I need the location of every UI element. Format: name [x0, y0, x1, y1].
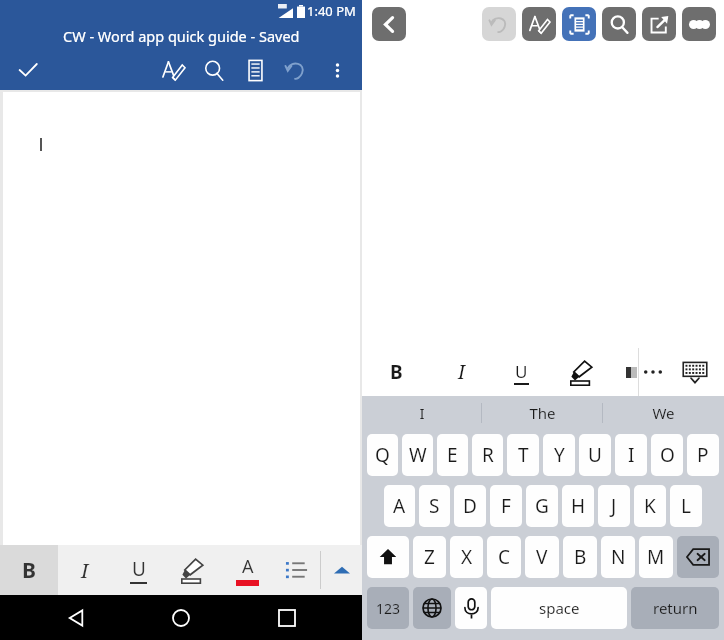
button[interactable]: space: [491, 587, 627, 629]
button[interactable]: M: [639, 536, 673, 578]
button[interactable]: Expand toolbar: [321, 545, 362, 595]
button[interactable]: Recents: [257, 595, 317, 640]
staticText: A: [242, 554, 254, 579]
button[interactable]: X: [450, 536, 483, 578]
staticText: A: [393, 493, 406, 519]
button[interactable]: U: [579, 434, 611, 476]
button[interactable]: Ink: [153, 50, 194, 90]
button[interactable]: Done: [8, 50, 48, 90]
staticText: J: [611, 493, 617, 519]
staticText: space: [539, 598, 580, 618]
staticText: W: [409, 442, 427, 468]
staticText: R: [482, 442, 494, 468]
staticText: U: [132, 556, 146, 582]
button[interactable]: More options: [317, 50, 358, 90]
button[interactable]: I: [58, 545, 112, 595]
button[interactable]: O: [651, 434, 683, 476]
staticText: I: [81, 557, 89, 584]
staticText: We: [652, 403, 675, 423]
button[interactable]: F: [490, 485, 522, 527]
button[interactable]: L: [670, 485, 702, 527]
staticText: X: [461, 544, 473, 570]
button[interactable]: Q: [367, 434, 398, 476]
button[interactable]: T: [507, 434, 539, 476]
button[interactable]: Share: [642, 7, 676, 41]
staticText: B: [574, 544, 587, 570]
staticText: M: [647, 544, 665, 570]
staticText: K: [644, 493, 656, 519]
button[interactable]: W: [402, 434, 433, 476]
button[interactable]: Voice input: [455, 587, 487, 629]
staticText: T: [518, 442, 529, 468]
button[interactable]: Read view: [235, 50, 276, 90]
button[interactable]: 123: [367, 587, 409, 629]
button[interactable]: N: [601, 536, 635, 578]
staticText: O: [660, 442, 675, 468]
button[interactable]: Backspace: [677, 536, 719, 578]
button[interactable]: Back: [372, 7, 406, 41]
button[interactable]: Ink: [522, 7, 556, 41]
staticText: C: [498, 544, 511, 570]
staticText: L: [681, 493, 691, 519]
button[interactable]: More formatting: [639, 348, 666, 396]
button[interactable]: Y: [543, 434, 575, 476]
staticText: 123: [376, 599, 401, 618]
button[interactable]: Bullets: [274, 545, 320, 595]
button[interactable]: return: [631, 587, 719, 629]
button[interactable]: Undo: [276, 50, 317, 90]
button[interactable]: K: [634, 485, 666, 527]
button[interactable]: U: [492, 348, 550, 396]
button[interactable]: C: [487, 536, 521, 578]
button[interactable]: V: [525, 536, 559, 578]
button[interactable]: Back: [46, 595, 106, 640]
staticText: The: [529, 403, 556, 423]
button[interactable]: P: [687, 434, 719, 476]
button[interactable]: Font color: [220, 545, 274, 595]
staticText: U: [515, 360, 528, 383]
button[interactable]: Hide keyboard: [666, 348, 724, 396]
button[interactable]: J: [598, 485, 630, 527]
button[interactable]: The: [482, 396, 603, 430]
button[interactable]: I: [430, 348, 492, 396]
staticText: Q: [375, 442, 390, 468]
button[interactable]: B: [362, 348, 430, 396]
button[interactable]: U: [112, 545, 164, 595]
button[interactable]: Change language: [413, 587, 451, 629]
button[interactable]: R: [472, 434, 503, 476]
button[interactable]: S: [419, 485, 450, 527]
staticText: V: [536, 544, 548, 570]
button[interactable]: I: [615, 434, 647, 476]
staticText: Y: [554, 442, 565, 468]
staticText: N: [611, 544, 626, 570]
staticText: Z: [424, 544, 435, 570]
button[interactable]: E: [437, 434, 468, 476]
button[interactable]: Z: [413, 536, 446, 578]
button[interactable]: I: [362, 396, 482, 430]
button[interactable]: Layout: [562, 7, 596, 41]
button[interactable]: B: [0, 545, 58, 595]
staticText: B: [390, 359, 403, 385]
staticText: S: [429, 493, 440, 519]
button[interactable]: H: [562, 485, 594, 527]
staticText: E: [447, 442, 458, 468]
button[interactable]: Search: [194, 50, 235, 90]
staticText: P: [697, 442, 709, 468]
button[interactable]: Highlight: [164, 545, 220, 595]
button[interactable]: More options: [682, 7, 716, 41]
staticText: I: [419, 403, 425, 423]
button[interactable]: Highlight: [550, 348, 612, 396]
button[interactable]: Undo: [482, 7, 516, 41]
staticText: G: [535, 493, 549, 519]
button[interactable]: Shift: [367, 536, 409, 578]
staticText: U: [588, 442, 602, 468]
staticText: H: [571, 493, 586, 519]
button[interactable]: Home: [151, 595, 211, 640]
button[interactable]: G: [526, 485, 558, 527]
button[interactable]: B: [563, 536, 597, 578]
button[interactable]: D: [454, 485, 486, 527]
button[interactable]: A: [384, 485, 415, 527]
staticText: CW - Word app quick guide - Saved: [63, 26, 300, 46]
button[interactable]: Search: [602, 7, 636, 41]
button[interactable]: We: [603, 396, 724, 430]
staticText: return: [653, 598, 698, 618]
